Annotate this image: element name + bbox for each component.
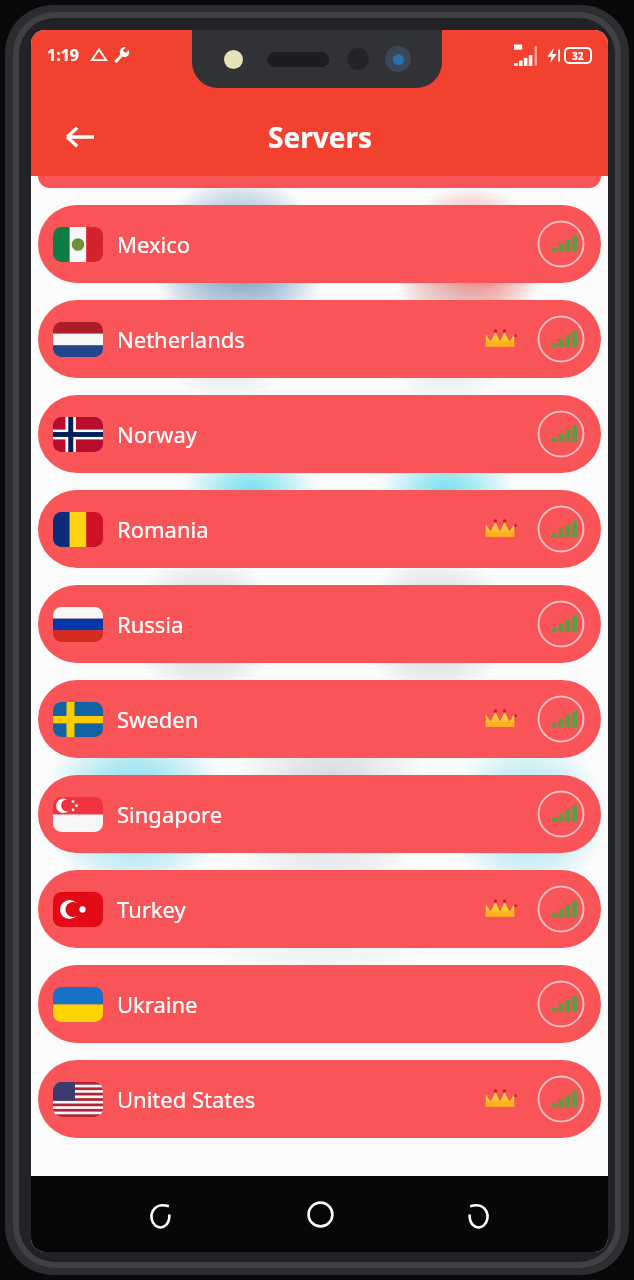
staticText: Romania — [117, 514, 209, 544]
button[interactable]: Signal strength — [537, 600, 585, 648]
button[interactable]: Signal strength — [537, 505, 585, 553]
staticText: 32 — [572, 49, 584, 62]
button[interactable]: Signal strength — [537, 315, 585, 363]
staticText: Norway — [117, 419, 197, 449]
staticText: Servers — [268, 118, 372, 156]
button[interactable]: Russia — [38, 585, 601, 663]
button[interactable]: Back — [55, 112, 105, 162]
button[interactable]: Signal strength — [537, 220, 585, 268]
staticText: Sweden — [117, 704, 199, 734]
staticText: Turkey — [117, 894, 186, 924]
staticText: United States — [117, 1084, 256, 1114]
staticText: Netherlands — [117, 324, 245, 354]
button[interactable]: Signal strength — [537, 695, 585, 743]
button[interactable]: Recents — [130, 1184, 190, 1244]
staticText: Mexico — [117, 229, 191, 259]
staticText: Singapore — [117, 799, 223, 829]
button[interactable]: Singapore — [38, 775, 601, 853]
button[interactable]: Back — [449, 1184, 509, 1244]
button[interactable]: Sweden — [38, 680, 601, 758]
button[interactable]: Signal strength — [537, 980, 585, 1028]
staticText: Ukraine — [117, 989, 198, 1019]
button[interactable]: Signal strength — [537, 410, 585, 458]
button[interactable]: United States — [38, 1060, 601, 1138]
button[interactable]: Mexico — [38, 205, 601, 283]
button[interactable]: Signal strength — [537, 1075, 585, 1123]
button[interactable]: Turkey — [38, 870, 601, 948]
button[interactable]: Signal strength — [537, 790, 585, 838]
button[interactable]: Norway — [38, 395, 601, 473]
button[interactable]: Netherlands — [38, 300, 601, 378]
staticText: 1:19 — [47, 44, 79, 66]
button[interactable]: Signal strength — [537, 885, 585, 933]
button[interactable]: Home — [290, 1184, 350, 1244]
button[interactable]: Romania — [38, 490, 601, 568]
staticText: Russia — [117, 609, 184, 639]
button[interactable]: Ukraine — [38, 965, 601, 1043]
